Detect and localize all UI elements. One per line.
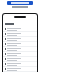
button[interactable] [5, 62, 35, 66]
button[interactable] [5, 37, 35, 41]
button[interactable] [5, 67, 35, 71]
button[interactable] [5, 27, 35, 31]
button[interactable] [5, 32, 35, 36]
button[interactable] [5, 52, 35, 56]
button[interactable] [5, 42, 35, 46]
button[interactable] [5, 47, 35, 51]
button[interactable] [7, 1, 33, 5]
button[interactable] [5, 57, 35, 61]
